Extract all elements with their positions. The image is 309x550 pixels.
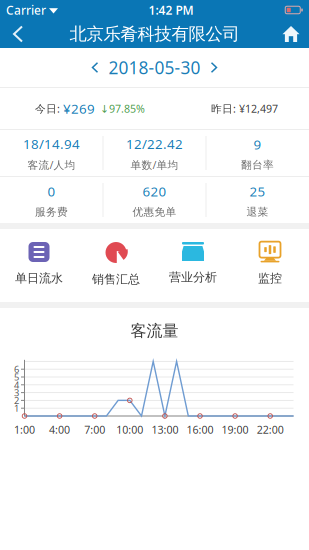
button[interactable]: 12/22.42	[103, 130, 205, 176]
staticText: 620	[142, 183, 166, 200]
button[interactable]: 销售汇总	[77, 229, 154, 302]
staticText: 单数/单均	[130, 158, 178, 172]
staticText: 1:00	[14, 422, 35, 437]
staticText: 1	[14, 402, 19, 414]
staticText: 客流量	[130, 321, 178, 341]
staticText: 昨日:	[211, 101, 239, 116]
staticText: 19:00	[222, 422, 249, 437]
button[interactable]: 单日流水	[0, 229, 77, 302]
staticText: 6	[14, 363, 19, 375]
staticText: 优惠免单	[132, 205, 176, 218]
staticText: 5	[14, 371, 19, 383]
staticText: 退菜	[246, 205, 268, 218]
button[interactable]: Home	[273, 20, 309, 48]
button[interactable]: 营业分析	[154, 229, 231, 302]
staticText: 10:00	[116, 422, 143, 437]
staticText: ¥269	[63, 100, 95, 117]
staticText: 4:00	[49, 422, 70, 437]
staticText: 22:00	[257, 422, 284, 437]
staticText: 9	[253, 136, 261, 153]
staticText: 服务费	[35, 205, 68, 218]
staticText: 16:00	[186, 422, 213, 437]
staticText: 2018-05-30	[108, 56, 200, 79]
button[interactable]: 2018-05-30	[0, 48, 309, 87]
staticText: Carrier	[6, 2, 46, 18]
staticText: 25	[249, 183, 265, 200]
staticText: 销售汇总	[92, 272, 140, 287]
button[interactable]: 25	[206, 177, 308, 223]
staticText: 营业分析	[169, 270, 217, 285]
button[interactable]: 9	[206, 130, 308, 176]
staticText: 3	[14, 386, 19, 399]
button[interactable]: Back	[0, 20, 36, 48]
button[interactable]: 18/14.94	[0, 130, 102, 176]
staticText: 0	[47, 183, 55, 200]
staticText: 7:00	[84, 422, 105, 437]
staticText: 单日流水	[15, 271, 63, 286]
staticText: 4	[14, 379, 19, 391]
staticText: 12/22.42	[126, 135, 183, 153]
staticText: 客流/人均	[27, 158, 75, 172]
button[interactable]: 0	[0, 177, 102, 223]
staticText: 监控	[258, 271, 282, 286]
staticText: 北京乐肴科技有限公司	[69, 23, 239, 45]
staticText: 13:00	[151, 422, 178, 437]
staticText: 1:42 PM	[148, 2, 193, 18]
staticText: ¥12,497	[239, 101, 278, 116]
staticText: ↓97.85%	[100, 101, 145, 116]
button[interactable]: 监控	[231, 229, 308, 302]
staticText: 今日:	[35, 101, 63, 116]
button[interactable]: 620	[103, 177, 205, 223]
staticText: 2	[14, 394, 19, 407]
staticText: 翻台率	[241, 158, 274, 171]
staticText: 18/14.94	[23, 135, 80, 153]
